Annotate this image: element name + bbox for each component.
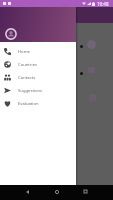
staticText: 19:48 (97, 1, 109, 7)
button[interactable]: Countries (0, 58, 76, 71)
staticText: Suggestions (18, 88, 43, 94)
button[interactable]: Recents (79, 185, 92, 198)
staticText: Home (18, 49, 30, 55)
staticText: Countries (18, 62, 38, 68)
staticText: Contacts (18, 75, 36, 81)
button[interactable]: Contacts (0, 71, 76, 84)
button[interactable]: Home (0, 45, 76, 58)
button[interactable]: Back (21, 185, 34, 198)
staticText: Evaluation (18, 101, 39, 107)
button[interactable]: Evaluation (0, 97, 76, 110)
button[interactable]: Suggestions (0, 84, 76, 97)
button[interactable]: Home (50, 185, 63, 198)
